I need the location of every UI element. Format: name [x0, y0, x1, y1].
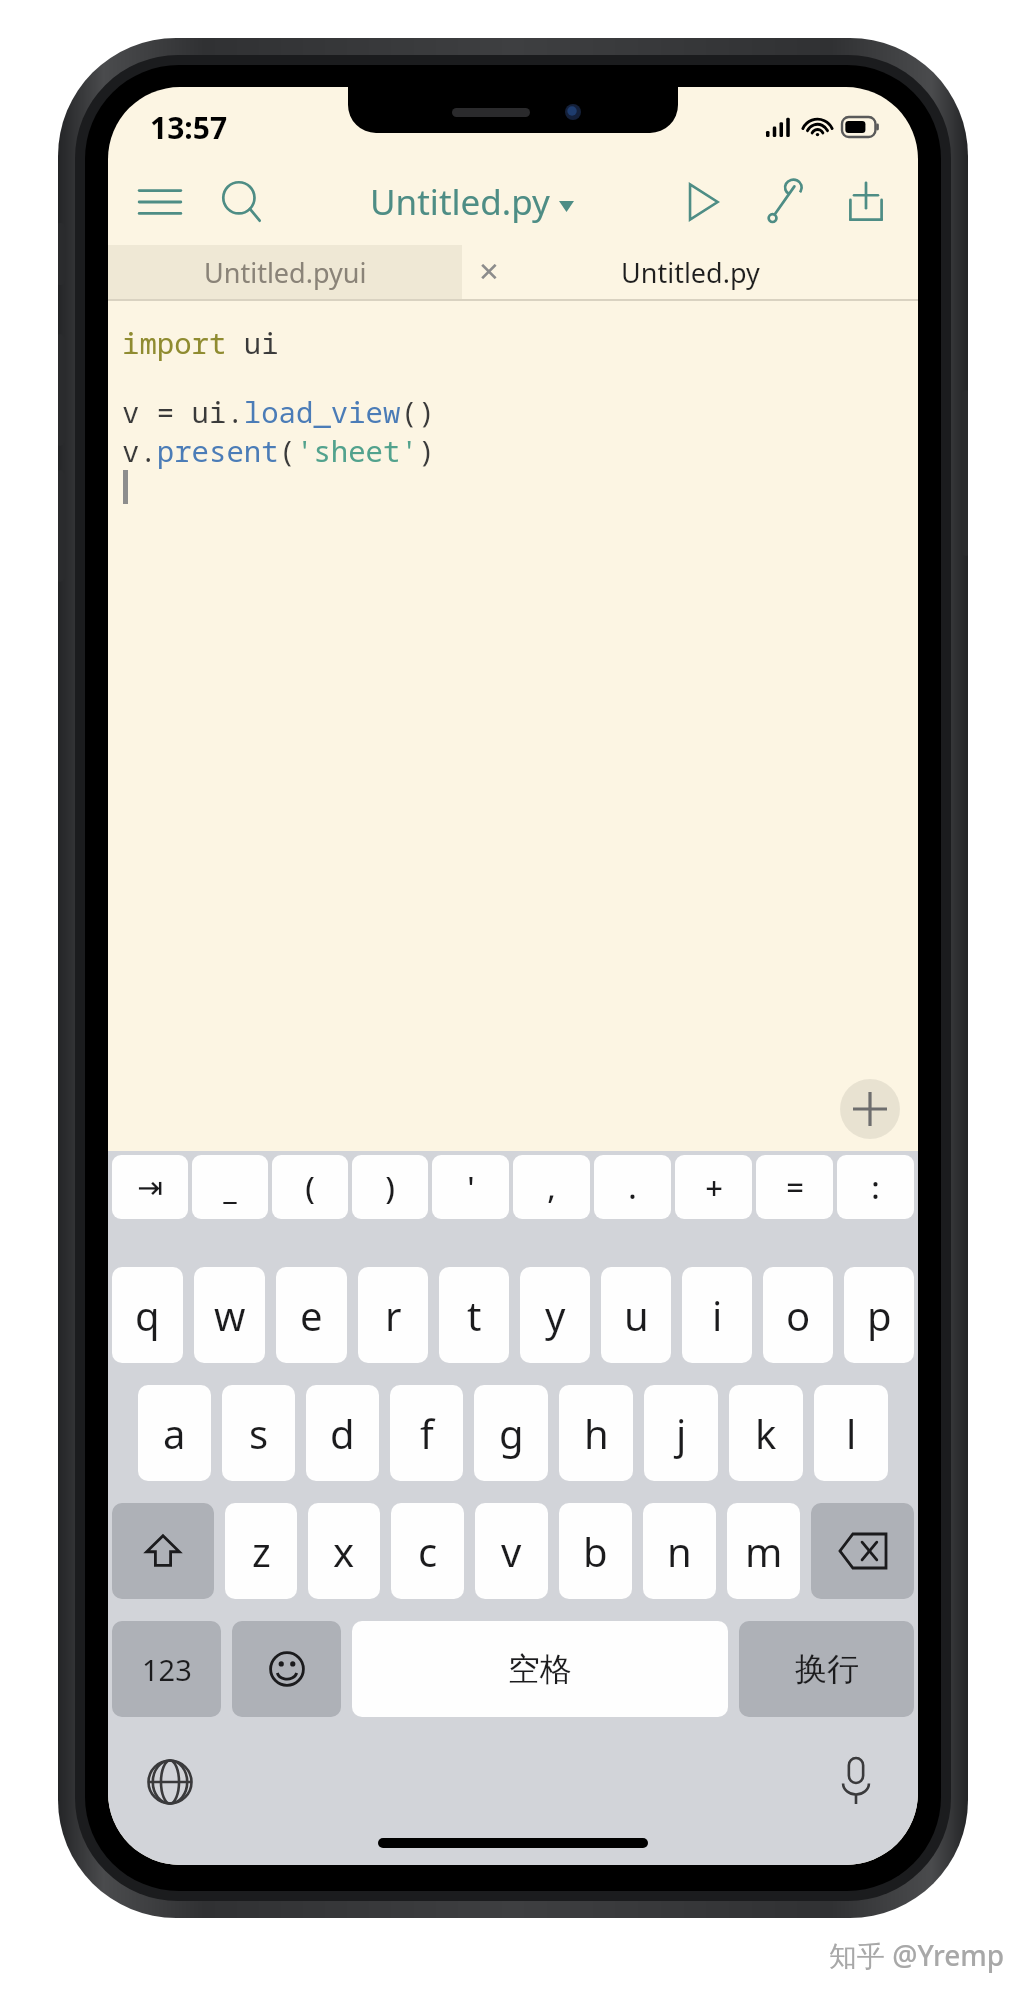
staticText: ): [385, 1166, 395, 1208]
button[interactable]: w: [194, 1267, 265, 1363]
button[interactable]: d: [306, 1385, 379, 1481]
staticText: v: [501, 1524, 522, 1578]
button[interactable]: p: [844, 1267, 914, 1363]
staticText: 空格: [508, 1649, 572, 1689]
button[interactable]: :: [837, 1155, 914, 1219]
button[interactable]: x: [308, 1503, 380, 1599]
button[interactable]: s: [222, 1385, 295, 1481]
button[interactable]: ': [432, 1155, 509, 1219]
staticText: Untitled.py: [370, 178, 550, 226]
staticText: .: [628, 1166, 637, 1208]
button[interactable]: (: [272, 1155, 348, 1219]
button[interactable]: Untitled.pyui: [108, 245, 462, 299]
staticText: s: [249, 1406, 269, 1460]
staticText: +: [705, 1166, 723, 1208]
button[interactable]: u: [601, 1267, 671, 1363]
staticText: c: [418, 1524, 438, 1578]
button[interactable]: n: [643, 1503, 716, 1599]
staticText: :: [871, 1166, 880, 1208]
button[interactable]: z: [225, 1503, 297, 1599]
staticText: x: [333, 1524, 355, 1578]
button[interactable]: y: [520, 1267, 590, 1363]
staticText: u: [624, 1288, 649, 1342]
button[interactable]: h: [559, 1385, 633, 1481]
staticText: 换行: [795, 1649, 859, 1689]
button[interactable]: c: [391, 1503, 464, 1599]
button[interactable]: Tools: [758, 176, 810, 228]
staticText: m: [745, 1524, 783, 1578]
button[interactable]: l: [814, 1385, 888, 1481]
staticText: ': [467, 1166, 475, 1208]
staticText: r: [385, 1288, 402, 1342]
staticText: w: [214, 1288, 246, 1342]
staticText: 123: [142, 1650, 192, 1689]
button[interactable]: _: [192, 1155, 268, 1219]
staticText: ,: [547, 1166, 556, 1208]
staticText: ⇥: [137, 1169, 163, 1205]
button[interactable]: ⇥: [112, 1155, 188, 1219]
button[interactable]: =: [756, 1155, 833, 1219]
button[interactable]: Shift: [112, 1503, 214, 1599]
staticText: z: [252, 1524, 271, 1578]
staticText: k: [755, 1406, 777, 1460]
staticText: =: [786, 1166, 804, 1208]
staticText: q: [135, 1288, 160, 1342]
button[interactable]: Menu: [134, 176, 186, 228]
button[interactable]: 换行: [739, 1621, 914, 1717]
staticText: l: [846, 1406, 857, 1460]
button[interactable]: v: [475, 1503, 548, 1599]
button[interactable]: ,: [513, 1155, 590, 1219]
button[interactable]: i: [682, 1267, 752, 1363]
button[interactable]: j: [644, 1385, 718, 1481]
staticText: i: [712, 1288, 723, 1342]
staticText: f: [420, 1406, 434, 1460]
staticText: _: [223, 1166, 237, 1208]
staticText: p: [867, 1288, 892, 1342]
button[interactable]: k: [729, 1385, 803, 1481]
button[interactable]: o: [763, 1267, 833, 1363]
staticText: b: [583, 1524, 608, 1578]
button[interactable]: r: [358, 1267, 428, 1363]
staticText: Untitled.pyui: [204, 254, 367, 291]
button[interactable]: a: [138, 1385, 211, 1481]
button[interactable]: q: [112, 1267, 183, 1363]
staticText: d: [330, 1406, 355, 1460]
staticText: v = ui.load_view(): [122, 392, 436, 431]
button[interactable]: Insert: [840, 1079, 900, 1139]
staticText: import ui: [122, 323, 279, 362]
button[interactable]: Run: [676, 176, 728, 228]
staticText: ✕: [478, 257, 500, 287]
button[interactable]: Add: [840, 176, 892, 228]
staticText: (: [305, 1166, 315, 1208]
button[interactable]: .: [594, 1155, 671, 1219]
button[interactable]: Backspace: [811, 1503, 914, 1599]
staticText: y: [545, 1288, 566, 1342]
button[interactable]: b: [559, 1503, 632, 1599]
button[interactable]: f: [390, 1385, 463, 1481]
staticText: g: [499, 1406, 524, 1460]
button[interactable]: Emoji: [232, 1621, 341, 1717]
button[interactable]: Dictation: [828, 1754, 884, 1810]
staticText: 知乎 @Yremp: [829, 1936, 1005, 1974]
button[interactable]: g: [474, 1385, 548, 1481]
button[interactable]: e: [276, 1267, 347, 1363]
staticText: v.present('sheet'): [122, 431, 436, 470]
button[interactable]: m: [727, 1503, 800, 1599]
button[interactable]: Search: [216, 176, 268, 228]
button[interactable]: 空格: [352, 1621, 728, 1717]
staticText: h: [584, 1406, 609, 1460]
staticText: o: [786, 1288, 811, 1342]
button[interactable]: Close tab: [466, 249, 512, 295]
button[interactable]: +: [675, 1155, 752, 1219]
button[interactable]: Language: [142, 1754, 198, 1810]
button[interactable]: 123: [112, 1621, 221, 1717]
staticText: n: [667, 1524, 692, 1578]
staticText: j: [676, 1406, 687, 1460]
button[interactable]: t: [439, 1267, 509, 1363]
staticText: a: [163, 1406, 186, 1460]
staticText: Untitled.py: [621, 254, 760, 291]
button[interactable]: ): [352, 1155, 428, 1219]
staticText: e: [300, 1288, 323, 1342]
staticText: 13:57: [150, 107, 228, 148]
button[interactable]: Untitled.py: [364, 172, 580, 232]
